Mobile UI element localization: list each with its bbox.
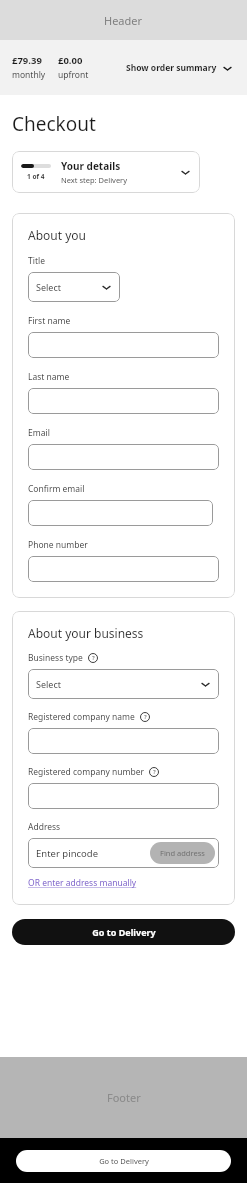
button[interactable]: More information [149, 767, 159, 777]
staticText: Business type [28, 652, 83, 664]
staticText: First name [28, 315, 71, 327]
staticText: Registered company name [28, 711, 135, 723]
staticText: ? [144, 713, 147, 721]
staticText: Next step: Delivery [61, 175, 128, 185]
staticText: Header [104, 13, 143, 28]
button[interactable]: OR enter address manually [28, 877, 137, 889]
staticText: 1 of 4 [27, 172, 45, 181]
button[interactable]: Go to Delivery [16, 1150, 231, 1172]
staticText: Select [36, 678, 61, 690]
staticText: Registered company number [28, 766, 144, 778]
button[interactable] [28, 556, 219, 582]
staticText: Checkout [12, 111, 96, 137]
staticText: Go to Delivery [99, 1156, 149, 1166]
button[interactable] [28, 444, 219, 470]
staticText: £0.00 [58, 54, 83, 67]
button[interactable]: Select [28, 669, 219, 699]
button[interactable] [28, 500, 213, 526]
button[interactable] [28, 728, 219, 754]
staticText: Find address [160, 848, 205, 858]
staticText: upfront [58, 69, 89, 81]
staticText: Your details [61, 159, 121, 173]
button[interactable] [28, 388, 219, 414]
button[interactable]: 1 of 4 [12, 151, 200, 193]
staticText: Go to Delivery [92, 926, 156, 938]
staticText: Address [28, 821, 61, 833]
button[interactable]: More information [88, 653, 98, 663]
staticText: About your business [28, 625, 144, 641]
staticText: About you [28, 227, 86, 243]
staticText: OR enter address manually [28, 877, 137, 889]
staticText: Enter pincode [36, 847, 99, 860]
button[interactable]: Find address [150, 842, 215, 864]
staticText: £79.39 [12, 54, 42, 67]
button[interactable]: Show order summary [122, 58, 237, 78]
button[interactable]: Go to Delivery [12, 919, 235, 945]
staticText: monthly [12, 69, 46, 81]
staticText: ? [153, 768, 156, 776]
staticText: Confirm email [28, 483, 85, 495]
staticText: Email [28, 427, 50, 439]
staticText: Title [28, 255, 45, 267]
staticText: Last name [28, 371, 70, 383]
button[interactable] [28, 783, 219, 809]
staticText: Show order summary [126, 62, 217, 74]
staticText: Select [36, 281, 61, 293]
button[interactable]: More information [140, 712, 150, 722]
staticText: ? [92, 654, 95, 662]
button[interactable]: Select [28, 272, 120, 302]
staticText: Phone number [28, 539, 88, 551]
staticText: Footer [107, 1090, 141, 1105]
button[interactable] [28, 332, 219, 358]
